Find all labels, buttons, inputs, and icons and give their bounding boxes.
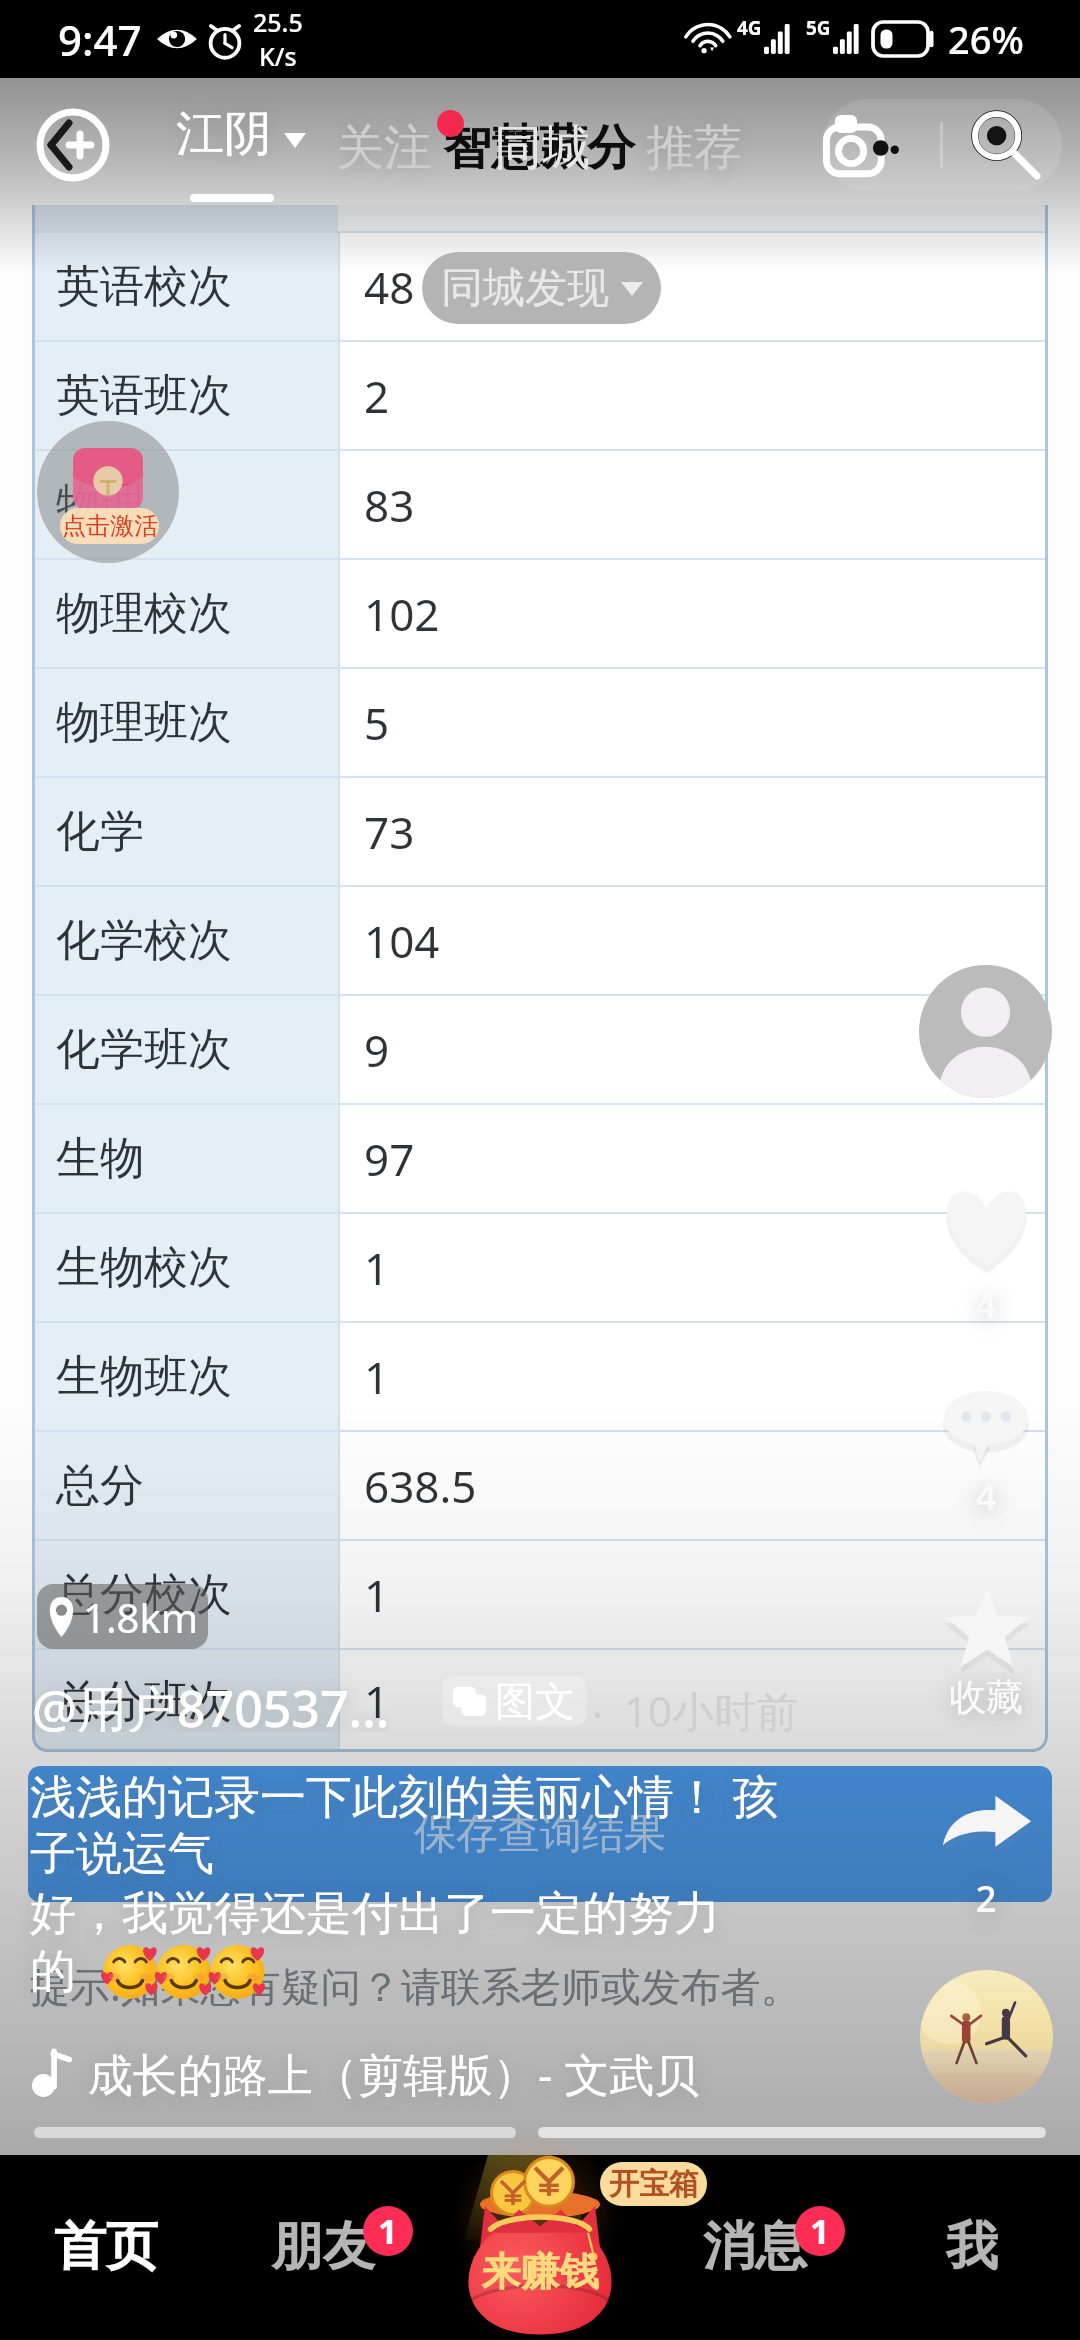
staticText: 消息 (703, 2214, 807, 2280)
staticText: K/s (259, 39, 297, 73)
button[interactable]: Author avatar (919, 965, 1052, 1098)
staticText: 收藏 (949, 1674, 1023, 1721)
button[interactable]: 首页 (1, 2183, 211, 2311)
button[interactable]: Search (960, 102, 1052, 188)
staticText: 江阴 (176, 104, 272, 164)
staticText: · (592, 1686, 603, 1740)
button[interactable]: 我 (867, 2183, 1077, 2311)
staticText: 我 (946, 2214, 998, 2280)
staticText: 1.8km (83, 1590, 199, 1644)
button[interactable]: 消息 (650, 2183, 860, 2311)
staticText: 1 (364, 1671, 390, 1731)
staticText: 97 (364, 1129, 415, 1189)
staticText: 9:47 (58, 11, 142, 68)
staticText: 物理班次 (56, 695, 232, 750)
staticText: 智慧藏分 (443, 118, 635, 178)
staticText: 首页 (54, 2214, 158, 2280)
staticText: 4 (975, 1470, 997, 1520)
staticText: 4 (975, 1278, 997, 1328)
staticText: 5 (364, 693, 390, 753)
staticText: 638.5 (364, 1456, 477, 1516)
staticText: 总分 (56, 1458, 144, 1513)
button[interactable]: 来赚钱 (440, 2155, 640, 2340)
staticText: 1 (364, 1238, 390, 1298)
staticText: 1 (810, 2208, 830, 2254)
staticText: 9 (364, 1020, 390, 1080)
staticText: 保存查询结果 (414, 1808, 666, 1861)
button[interactable]: 1.8km (37, 1584, 208, 1649)
staticText: 1 (364, 1347, 390, 1407)
staticText: 4G (737, 15, 762, 41)
staticText: 总分校次 (56, 1567, 232, 1622)
staticText: 1 (378, 2208, 398, 2254)
staticText: 的 (30, 1943, 76, 2001)
button[interactable]: Music cover (920, 1970, 1053, 2103)
staticText: 化学校次 (56, 913, 232, 968)
staticText: 提示:如果您有疑问？请联系老师或发布者。 (30, 1958, 801, 2013)
button[interactable]: 4 (910, 1164, 1062, 1326)
staticText: 2 (364, 366, 390, 426)
button[interactable]: 江阴 (176, 104, 306, 180)
staticText: 化学班次 (56, 1022, 232, 1077)
button[interactable]: @用户870537... (32, 1674, 390, 1732)
staticText: 1 (364, 1565, 390, 1625)
button[interactable]: 保存查询结果 (28, 1766, 1052, 1902)
button[interactable]: 关注 (336, 118, 432, 178)
staticText: 生物班次 (56, 1349, 232, 1404)
staticText: @用户870537... (32, 1674, 390, 1732)
staticText: 好，我觉得还是付出了一定的努力 (30, 1885, 720, 1943)
button[interactable]: Back (36, 108, 110, 182)
staticText: 同城发现 (441, 262, 609, 315)
staticText: 子说运气 (30, 1825, 214, 1883)
staticText: 英语校次 (56, 259, 232, 314)
staticText: 点击激活 (62, 511, 158, 541)
button[interactable]: 同城 (494, 118, 590, 178)
staticText: 化学 (56, 804, 144, 859)
staticText: 5G (806, 15, 831, 41)
staticText: 生物 (56, 1131, 144, 1186)
staticText: 25.5 (253, 5, 303, 39)
staticText: 26% (948, 13, 1024, 65)
staticText: 总分班次 (56, 1674, 232, 1729)
button[interactable]: 收藏 (910, 1568, 1062, 1722)
staticText: 浅浅的记录一下此刻的美丽心情！ 孩 (30, 1764, 778, 1826)
staticText: 102 (364, 584, 440, 644)
staticText: 成长的路上（剪辑版）- 文武贝 (88, 2043, 700, 2104)
staticText: 104 (364, 911, 440, 971)
staticText: 83 (364, 475, 415, 535)
button[interactable]: 图文 (442, 1676, 586, 1726)
staticText: 来赚钱 (476, 2247, 604, 2296)
button[interactable]: 4 (910, 1364, 1062, 1518)
button[interactable]: 点击激活 (36, 421, 180, 563)
staticText: 48 (364, 257, 415, 317)
staticText: 生物校次 (56, 1240, 232, 1295)
staticText: 图文 (495, 1676, 575, 1726)
staticText: 73 (364, 802, 415, 862)
staticText: 2 (975, 1872, 997, 1922)
staticText: 开宝箱 (609, 2165, 699, 2203)
staticText: 10小时前 (624, 1682, 799, 1739)
button[interactable]: 开宝箱 (600, 2162, 707, 2206)
button[interactable]: 推荐 (646, 118, 742, 178)
button[interactable]: 成长的路上（剪辑版）- 文武贝 (32, 2041, 700, 2105)
staticText: 英语班次 (56, 368, 232, 423)
button[interactable]: 2 (910, 1771, 1062, 1920)
button[interactable]: 同城发现 (422, 252, 661, 324)
staticText: 物理 (56, 477, 144, 532)
staticText: 物理校次 (56, 586, 232, 641)
staticText: 朋友 (271, 2214, 375, 2280)
button[interactable]: Camera (810, 102, 910, 188)
button[interactable]: 朋友 (218, 2183, 428, 2311)
